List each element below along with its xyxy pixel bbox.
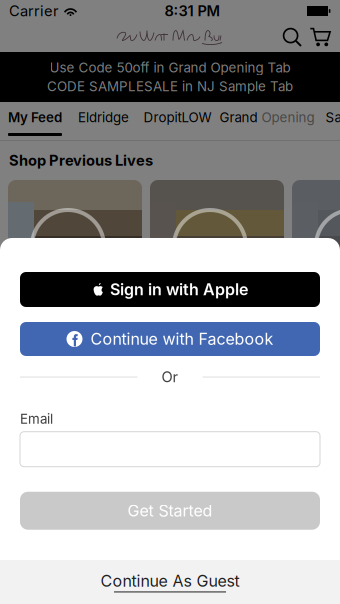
staticText: My Feed — [8, 110, 62, 125]
staticText: Shop Previous Lives — [9, 152, 153, 169]
staticText: Continue with Facebook — [90, 330, 273, 348]
staticText: Sign in with Apple — [110, 280, 248, 299]
staticText: Sale — [325, 110, 340, 125]
staticText: Use Code 50off in Grand Opening Tab — [49, 60, 290, 75]
button[interactable]: Eldridge — [69, 102, 138, 140]
button[interactable]: Shopping cart — [306, 24, 334, 50]
staticText: CODE SAMPLESALE in NJ Sample Tab — [47, 78, 293, 94]
button[interactable]: Sale — [317, 102, 340, 140]
staticText: Opening — [257, 110, 314, 125]
button[interactable]: Grand — [217, 102, 317, 140]
staticText: Eldridge — [78, 110, 129, 125]
staticText: Carrier — [9, 2, 59, 20]
staticText: DropitLOW — [143, 110, 211, 125]
button[interactable]: Sign in with Apple — [20, 272, 320, 307]
button[interactable]: DropitLOW — [138, 102, 217, 140]
button[interactable]: Continue As Guest — [0, 560, 340, 604]
staticText: 8:31 PM — [164, 2, 220, 20]
button[interactable]: My Feed — [1, 102, 69, 140]
staticText: Grand — [219, 110, 257, 125]
button[interactable]: Continue with Facebook — [20, 322, 320, 356]
button[interactable]: Get Started — [20, 492, 320, 530]
staticText: Email — [20, 411, 53, 427]
staticText: Get Started — [127, 501, 212, 520]
button[interactable]: Search — [278, 24, 306, 50]
staticText: Continue As Guest — [100, 572, 239, 590]
staticText: Or — [161, 368, 178, 386]
